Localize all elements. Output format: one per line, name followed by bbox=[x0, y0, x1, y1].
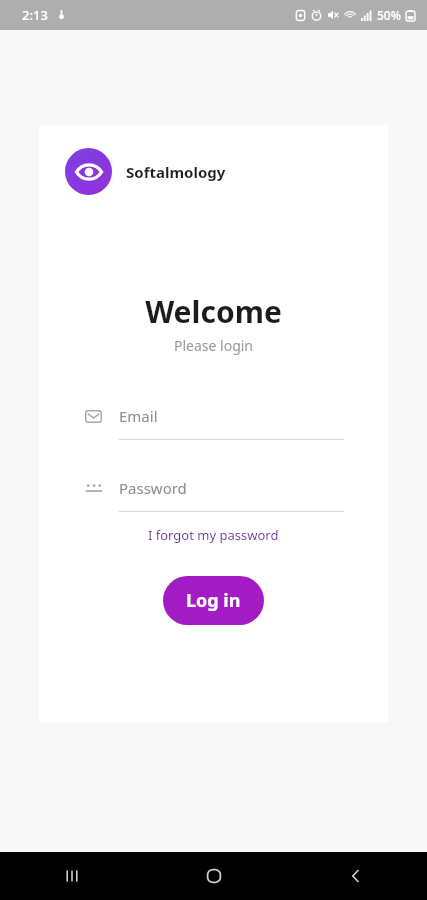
staticText: 50% bbox=[377, 7, 401, 23]
button[interactable]: Back bbox=[285, 852, 427, 900]
staticText: Please login bbox=[39, 336, 388, 355]
button[interactable]: Recents bbox=[0, 852, 143, 900]
staticText: Password bbox=[119, 478, 187, 498]
staticText: Welcome bbox=[39, 291, 388, 332]
button[interactable]: Log in bbox=[163, 576, 264, 625]
button[interactable]: I forgot my password bbox=[140, 522, 287, 548]
staticText: Softalmology bbox=[126, 162, 226, 182]
staticText: Email bbox=[119, 406, 158, 426]
button[interactable]: Password bbox=[119, 473, 344, 503]
button[interactable]: Home bbox=[143, 852, 285, 900]
staticText: 2:13 bbox=[22, 6, 48, 24]
button[interactable]: Email bbox=[119, 401, 344, 431]
staticText: Log in bbox=[186, 588, 241, 613]
staticText: I forgot my password bbox=[148, 526, 279, 544]
